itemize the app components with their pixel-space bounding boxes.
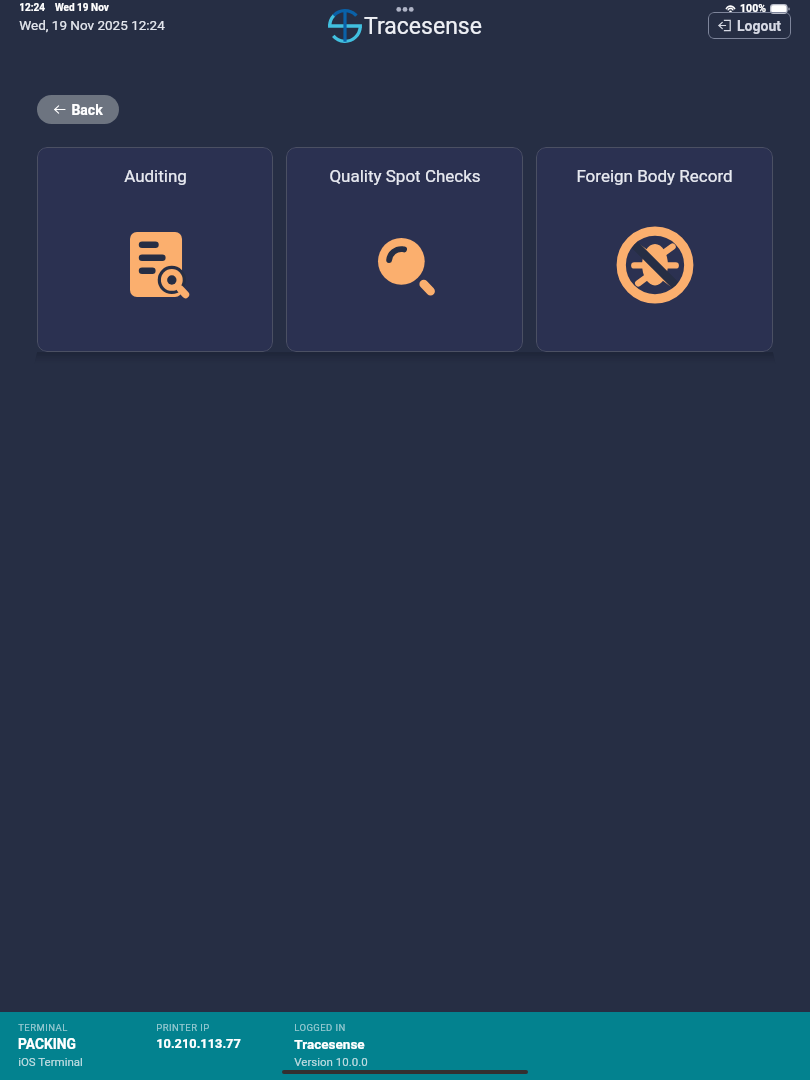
staticText: TERMINAL	[18, 1022, 68, 1033]
staticText: Quality Spot Checks	[329, 166, 481, 186]
button[interactable]: Quality Spot Checks	[286, 147, 523, 352]
staticText: Auditing	[124, 166, 187, 186]
staticText: Foreign Body Record	[576, 166, 733, 186]
staticText: PACKING	[18, 1036, 76, 1052]
button[interactable]: Auditing	[37, 147, 273, 352]
button[interactable]: Foreign Body Record	[536, 147, 773, 352]
staticText: 100%	[740, 2, 766, 14]
staticText: 10.210.113.77	[156, 1036, 241, 1051]
button[interactable]: Back	[37, 95, 119, 124]
staticText: LOGGED IN	[294, 1022, 346, 1033]
staticText: iOS Terminal	[18, 1055, 83, 1068]
staticText: Tracesense	[294, 1036, 365, 1052]
staticText: Logout	[737, 18, 781, 34]
staticText: PRINTER IP	[156, 1022, 210, 1033]
staticText: 12:24 Wed 19 Nov	[19, 2, 109, 14]
staticText: Wed, 19 Nov 2025 12:24	[19, 17, 165, 33]
button[interactable]: Logout	[708, 12, 791, 39]
staticText: Version 10.0.0	[294, 1055, 368, 1068]
staticText: Tracesense	[364, 13, 482, 40]
staticText: Back	[71, 102, 103, 118]
